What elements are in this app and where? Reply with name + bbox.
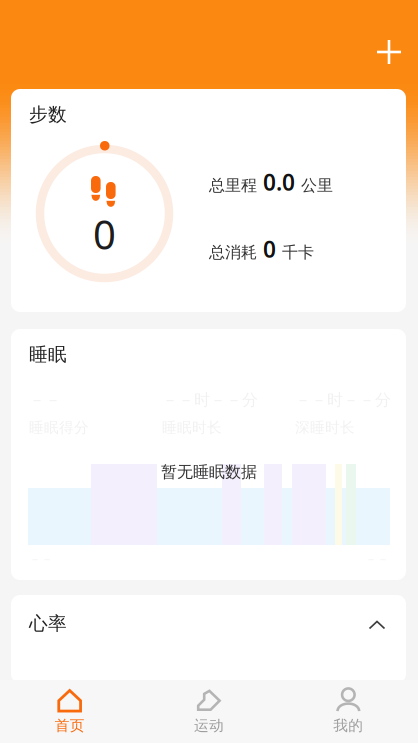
staticText: 0.0	[257, 167, 301, 197]
button[interactable]: Collapse heart rate	[360, 612, 394, 638]
staticText: 首页	[55, 716, 85, 734]
staticText: 睡眠	[29, 343, 67, 366]
staticText: 0	[257, 234, 282, 264]
staticText: 睡眠时长	[162, 419, 222, 437]
staticText: 千卡	[282, 243, 314, 262]
staticText: －－时－－分	[162, 390, 258, 410]
button[interactable]: Add	[367, 30, 411, 74]
button[interactable]: 运动	[139, 680, 279, 743]
staticText: 心率	[29, 612, 67, 635]
staticText: 睡眠得分	[29, 419, 89, 437]
staticText: 0	[93, 207, 116, 260]
staticText: 暂无睡眠数据	[161, 462, 257, 482]
staticText: 运动	[194, 716, 224, 734]
staticText: －－时－－分	[295, 390, 391, 410]
staticText: 公里	[301, 176, 333, 195]
staticText: 深睡时长	[295, 419, 355, 437]
staticText: 步数	[29, 103, 67, 126]
staticText: 总里程	[209, 176, 257, 195]
staticText: 我的	[333, 716, 363, 734]
button[interactable]: 我的	[279, 680, 418, 743]
button[interactable]: 首页	[0, 680, 139, 743]
staticText: 总消耗	[209, 243, 257, 262]
